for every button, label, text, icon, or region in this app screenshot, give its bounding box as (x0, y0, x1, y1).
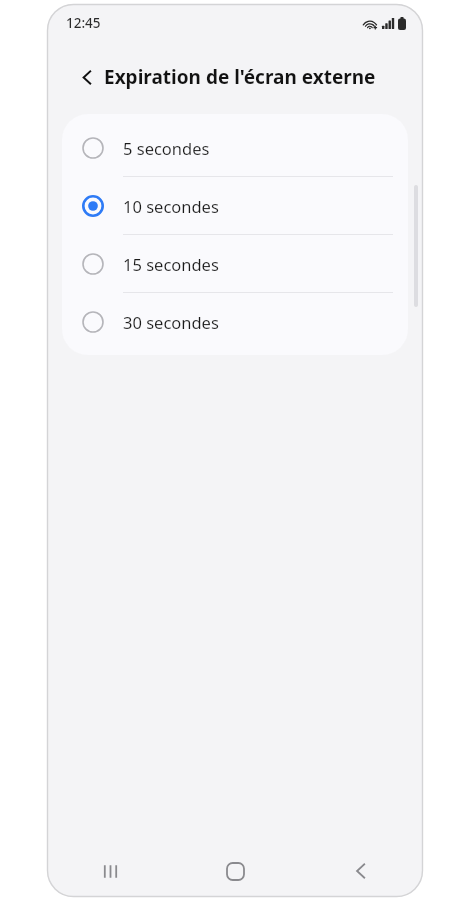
button[interactable]: Retour (66, 56, 108, 98)
staticText: 12:45 (66, 14, 101, 32)
button[interactable]: Accueil (173, 845, 298, 897)
staticText: 15 secondes (123, 253, 219, 275)
button[interactable]: 30 secondes (62, 293, 408, 350)
button[interactable]: 5 secondes (62, 119, 408, 176)
button[interactable]: Retour (298, 845, 423, 897)
button[interactable]: Récents (47, 845, 173, 897)
staticText: 10 secondes (123, 195, 219, 217)
staticText: 5 secondes (123, 137, 210, 159)
button[interactable]: 15 secondes (62, 235, 408, 292)
staticText: 30 secondes (123, 311, 219, 333)
button[interactable]: 10 secondes (62, 177, 408, 234)
staticText: Expiration de l'écran externe (104, 64, 376, 90)
